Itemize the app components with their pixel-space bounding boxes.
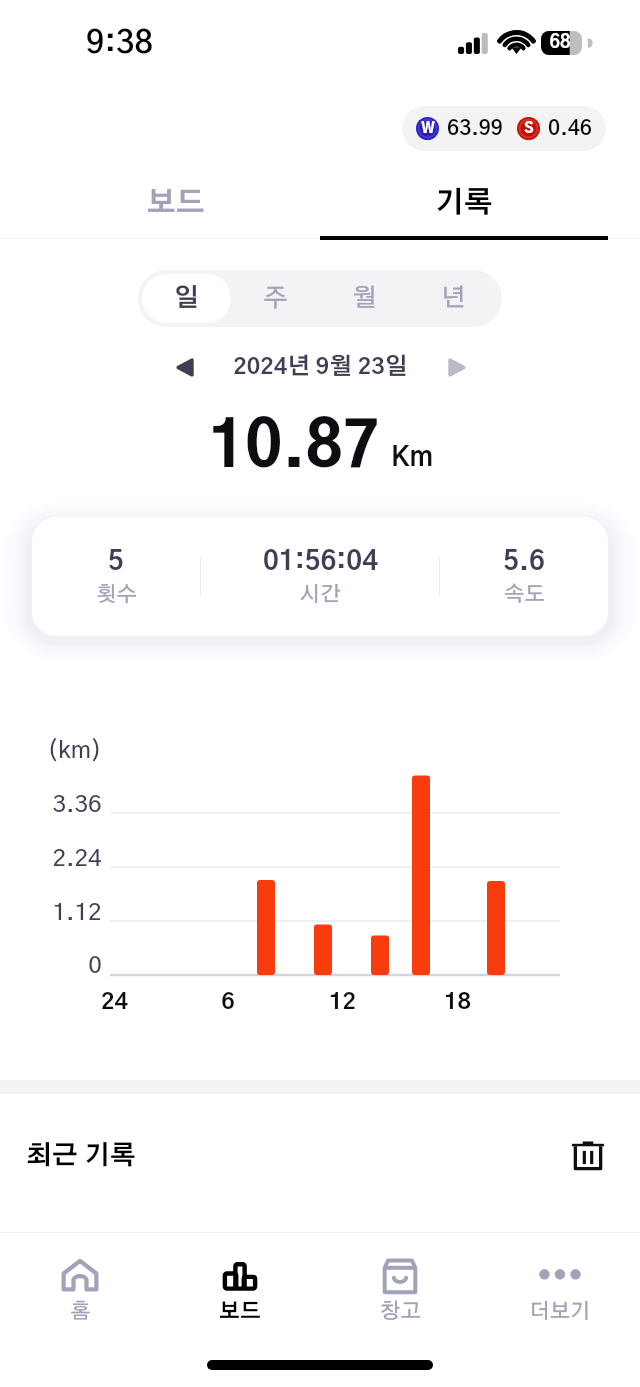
staticText: (km) xyxy=(47,739,102,763)
button[interactable]: 5.6 xyxy=(440,548,608,605)
button[interactable]: 01:56:04 xyxy=(201,548,439,605)
button[interactable]: W xyxy=(402,106,606,151)
button[interactable]: Previous day xyxy=(163,345,207,389)
button[interactable]: Delete records xyxy=(560,1128,616,1184)
staticText: 10.87 xyxy=(208,418,380,480)
staticText: 9:38 xyxy=(86,27,153,59)
button[interactable]: 월 xyxy=(320,274,409,323)
staticText: 더보기 xyxy=(529,1301,591,1322)
button[interactable]: 5 xyxy=(32,548,200,605)
staticText: 횟수 xyxy=(96,584,137,605)
staticText: 0.46 xyxy=(548,118,592,139)
staticText: 기록 xyxy=(435,189,493,218)
button[interactable]: 창고 xyxy=(320,1247,480,1330)
button[interactable]: Next day xyxy=(434,345,478,389)
staticText: W xyxy=(421,122,435,136)
staticText: 년 xyxy=(441,286,466,311)
staticText: 12 xyxy=(329,991,356,1014)
staticText: 68 xyxy=(549,34,571,52)
staticText: 01:56:04 xyxy=(263,548,378,575)
staticText: 2.24 xyxy=(52,847,102,871)
staticText: 최근 기록 xyxy=(26,1143,136,1169)
staticText: 63.99 xyxy=(447,118,503,139)
staticText: 주 xyxy=(263,286,288,311)
staticText: 24 xyxy=(101,991,128,1014)
staticText: 5 xyxy=(108,548,124,575)
button[interactable]: 보드 xyxy=(160,1247,320,1330)
staticText: 홈 xyxy=(70,1301,91,1322)
staticText: 보드 xyxy=(147,189,205,218)
staticText: Km xyxy=(391,444,433,471)
staticText: 창고 xyxy=(380,1301,421,1322)
staticText: 시간 xyxy=(300,584,341,605)
button[interactable]: 홈 xyxy=(0,1247,160,1330)
staticText: 월 xyxy=(352,286,377,311)
staticText: 속도 xyxy=(504,584,545,605)
staticText: 5.6 xyxy=(503,548,545,575)
staticText: S xyxy=(524,122,534,136)
staticText: 2024년 9월 23일 xyxy=(233,356,408,379)
staticText: 18 xyxy=(444,991,471,1014)
button[interactable]: 일 xyxy=(142,274,231,323)
staticText: 6 xyxy=(221,991,235,1014)
button[interactable]: 년 xyxy=(409,274,498,323)
button[interactable]: 더보기 xyxy=(480,1247,640,1330)
button[interactable]: 보드 xyxy=(32,166,320,240)
staticText: 보드 xyxy=(219,1301,261,1322)
staticText: 일 xyxy=(174,286,199,311)
staticText: 0 xyxy=(88,954,102,978)
staticText: 3.36 xyxy=(52,793,102,817)
button[interactable]: 주 xyxy=(231,274,320,323)
staticText: 1.12 xyxy=(52,901,102,925)
button[interactable]: 기록 xyxy=(320,166,608,240)
